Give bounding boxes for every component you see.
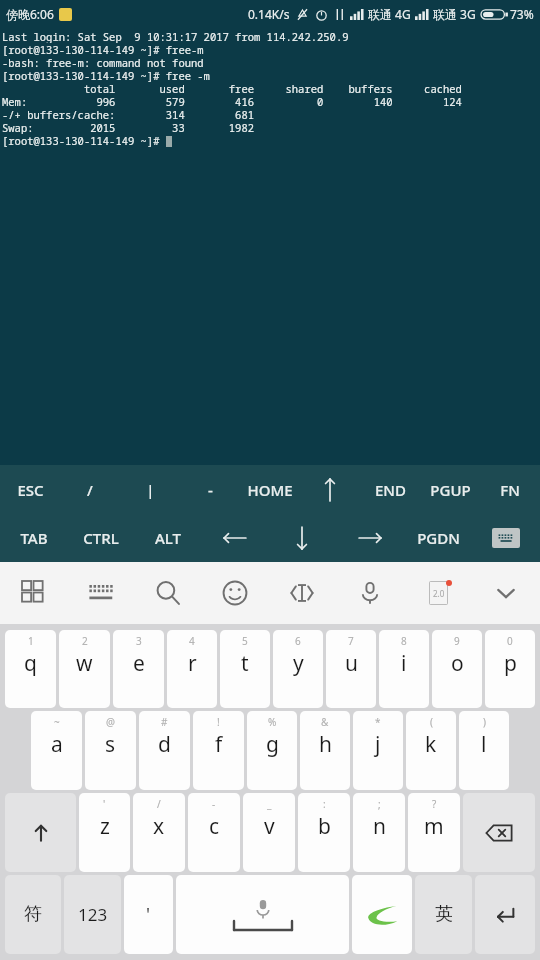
staticText: ': [103, 797, 106, 811]
staticText: c: [209, 812, 220, 841]
staticText: z: [100, 812, 110, 841]
button[interactable]: Switch input method: [352, 875, 412, 954]
staticText: 1: [28, 634, 34, 648]
staticText: 8: [401, 634, 407, 648]
button[interactable]: Up: [300, 465, 360, 514]
button[interactable]: &: [300, 711, 350, 790]
button[interactable]: Emoji: [201, 562, 268, 624]
button[interactable]: 6: [273, 630, 323, 708]
button[interactable]: CTRL: [67, 514, 134, 562]
button[interactable]: TAB: [0, 514, 67, 562]
button[interactable]: ALT: [134, 514, 201, 562]
staticText: d: [158, 730, 171, 759]
staticText: /: [157, 797, 161, 811]
button[interactable]: ': [124, 875, 173, 954]
staticText: 2.0: [433, 588, 445, 599]
button[interactable]: ?: [408, 793, 460, 872]
button[interactable]: 3: [113, 630, 164, 708]
button[interactable]: 123: [64, 875, 121, 954]
staticText: w: [76, 649, 93, 678]
staticText: [root@133-130-114-149 ~]#: [2, 134, 166, 148]
button[interactable]: Left: [201, 514, 268, 562]
button[interactable]: FN: [480, 465, 540, 514]
button[interactable]: 7: [326, 630, 376, 708]
button[interactable]: Shift: [5, 793, 76, 872]
button[interactable]: Enter: [475, 875, 535, 954]
button[interactable]: Search: [134, 562, 201, 624]
button[interactable]: /: [133, 793, 185, 872]
staticText: :: [323, 797, 326, 811]
staticText: ESC: [17, 480, 44, 500]
staticText: 9: [454, 634, 460, 648]
staticText: [root@133-130-114-149 ~]# free -m: [2, 69, 210, 82]
staticText: u: [345, 649, 358, 678]
staticText: q: [24, 649, 37, 678]
staticText: *: [375, 715, 381, 729]
button[interactable]: Right: [336, 514, 404, 562]
button[interactable]: 9: [432, 630, 482, 708]
button[interactable]: :: [298, 793, 350, 872]
button[interactable]: -: [188, 793, 240, 872]
button[interactable]: 4: [167, 630, 217, 708]
staticText: -bash: free-m: command not found: [2, 56, 204, 69]
staticText: !: [217, 715, 220, 729]
button[interactable]: 2: [59, 630, 110, 708]
staticText: t: [241, 649, 249, 678]
staticText: e: [133, 649, 145, 678]
button[interactable]: ESC: [0, 465, 60, 514]
button[interactable]: Voice input: [336, 562, 404, 624]
staticText: -: [212, 797, 216, 811]
staticText: -: [208, 480, 213, 500]
button[interactable]: #: [139, 711, 190, 790]
staticText: %: [268, 715, 277, 729]
staticText: [root@133-130-114-149 ~]# free-m: [2, 43, 204, 56]
staticText: ): [483, 715, 486, 729]
button[interactable]: @: [85, 711, 136, 790]
button[interactable]: ;: [353, 793, 405, 872]
staticText: HOME: [247, 480, 293, 500]
staticText: ?: [432, 797, 437, 811]
staticText: i: [401, 649, 407, 678]
button[interactable]: -: [180, 465, 240, 514]
button[interactable]: Keyboard: [472, 514, 540, 562]
button[interactable]: *: [353, 711, 403, 790]
button[interactable]: Hide keyboard: [472, 562, 540, 624]
staticText: h: [319, 730, 332, 759]
button[interactable]: Space: [176, 875, 349, 954]
button[interactable]: 5: [220, 630, 270, 708]
staticText: ': [146, 902, 151, 927]
staticText: 73%: [510, 6, 534, 22]
staticText: 联通 4G: [368, 6, 411, 22]
button[interactable]: ~: [31, 711, 82, 790]
button[interactable]: ': [79, 793, 130, 872]
button[interactable]: PGUP: [420, 465, 480, 514]
staticText: x: [153, 812, 165, 841]
button[interactable]: 英: [415, 875, 472, 954]
button[interactable]: %: [247, 711, 297, 790]
button[interactable]: 8: [379, 630, 429, 708]
staticText: 5: [242, 634, 248, 648]
button[interactable]: 0: [485, 630, 535, 708]
button[interactable]: Apps: [0, 562, 67, 624]
button[interactable]: ): [459, 711, 509, 790]
button[interactable]: END: [360, 465, 420, 514]
staticText: Mem: 996 579 416 0 140 124: [2, 95, 462, 108]
staticText: ;: [378, 797, 381, 811]
staticText: ALT: [155, 528, 181, 548]
button[interactable]: _: [243, 793, 295, 872]
button[interactable]: !: [193, 711, 244, 790]
button[interactable]: Move cursor: [268, 562, 336, 624]
button[interactable]: Keyboard layout: [67, 562, 134, 624]
button[interactable]: Version 2.0: [404, 562, 472, 624]
button[interactable]: |: [120, 465, 180, 514]
button[interactable]: PGDN: [404, 514, 472, 562]
button[interactable]: Backspace: [463, 793, 535, 872]
button[interactable]: HOME: [240, 465, 300, 514]
button[interactable]: 符: [5, 875, 61, 954]
staticText: v: [264, 812, 275, 841]
staticText: &: [321, 715, 329, 729]
button[interactable]: (: [406, 711, 456, 790]
button[interactable]: Down: [268, 514, 336, 562]
button[interactable]: 1: [5, 630, 56, 708]
button[interactable]: /: [60, 465, 120, 514]
